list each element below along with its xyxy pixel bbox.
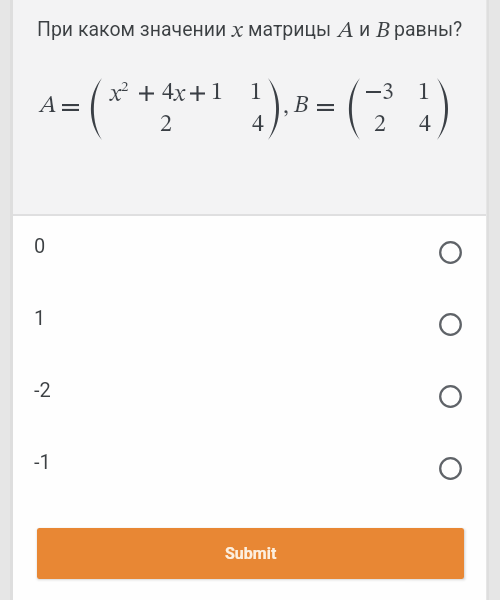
button[interactable]: -1 bbox=[13, 432, 486, 504]
staticText: A bbox=[40, 94, 57, 118]
staticText: -1 bbox=[34, 450, 51, 473]
staticText: 1 bbox=[34, 306, 46, 329]
button[interactable]: 0 bbox=[13, 216, 486, 288]
button[interactable]: 1 bbox=[13, 288, 486, 360]
staticText: и bbox=[359, 18, 371, 41]
staticText: Submit bbox=[225, 544, 277, 563]
staticText: x bbox=[110, 83, 121, 107]
other: Select answer 0 bbox=[439, 241, 462, 264]
staticText: 2 bbox=[121, 80, 129, 95]
staticText: 3 bbox=[382, 81, 394, 105]
staticText: 0 bbox=[34, 234, 46, 257]
staticText: 4 bbox=[419, 113, 431, 137]
button[interactable]: -2 bbox=[13, 360, 486, 432]
staticText: равны? bbox=[394, 18, 463, 41]
staticText: 1 bbox=[250, 81, 262, 105]
other: Select answer 1 bbox=[439, 313, 462, 336]
button[interactable]: Submit bbox=[37, 528, 464, 579]
staticText: При каком значении bbox=[37, 18, 227, 41]
staticText: матрицы bbox=[248, 18, 332, 41]
staticText: 4 bbox=[252, 113, 264, 137]
staticText: 1 bbox=[418, 81, 430, 105]
staticText: -2 bbox=[34, 378, 51, 401]
staticText: A bbox=[338, 19, 354, 42]
staticText: x bbox=[174, 83, 185, 107]
other: Select answer -1 bbox=[439, 457, 462, 480]
staticText: B bbox=[376, 19, 390, 42]
other: Select answer -2 bbox=[439, 385, 462, 408]
staticText: 2 bbox=[374, 113, 386, 137]
staticText: 2 bbox=[160, 113, 172, 137]
staticText: 4 bbox=[162, 81, 174, 105]
staticText: 1 bbox=[211, 81, 223, 105]
staticText: , bbox=[283, 95, 289, 119]
staticText: x bbox=[232, 19, 243, 42]
staticText: B bbox=[294, 94, 309, 118]
